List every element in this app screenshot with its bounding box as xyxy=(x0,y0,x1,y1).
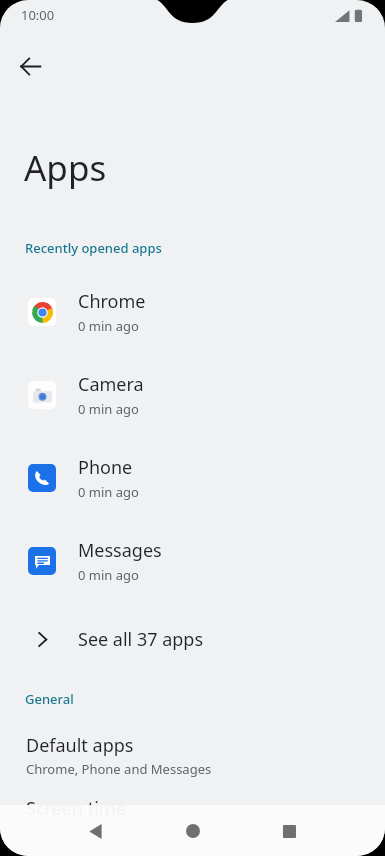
staticText: 0 min ago xyxy=(78,483,139,501)
button[interactable]: Messages xyxy=(0,519,385,602)
staticText: Screen time xyxy=(26,796,126,821)
button[interactable]: Camera xyxy=(0,353,385,436)
button[interactable]: Chrome xyxy=(0,270,385,353)
staticText: Default apps xyxy=(26,733,134,758)
staticText: See all 37 apps xyxy=(78,627,204,652)
button[interactable]: Back xyxy=(74,809,118,853)
button[interactable]: See all 37 apps xyxy=(0,614,385,664)
button[interactable]: Default apps xyxy=(0,733,385,778)
staticText: 0 min ago xyxy=(78,317,139,335)
staticText: Camera xyxy=(78,372,144,397)
button[interactable]: Phone xyxy=(0,436,385,519)
button[interactable]: Home xyxy=(171,809,215,853)
staticText: Apps xyxy=(24,144,107,192)
button[interactable]: Screen time xyxy=(0,796,385,821)
staticText: General xyxy=(25,690,74,708)
staticText: Chrome, Phone and Messages xyxy=(26,760,212,778)
button[interactable]: Back xyxy=(8,44,52,88)
staticText: 0 min ago xyxy=(78,400,139,418)
staticText: 0 min ago xyxy=(78,566,139,584)
staticText: Chrome xyxy=(78,289,146,314)
staticText: Recently opened apps xyxy=(25,239,162,257)
staticText: Messages xyxy=(78,538,162,563)
button[interactable]: Recent apps xyxy=(267,809,311,853)
staticText: Phone xyxy=(78,455,133,480)
staticText: 10:00 xyxy=(21,6,55,24)
